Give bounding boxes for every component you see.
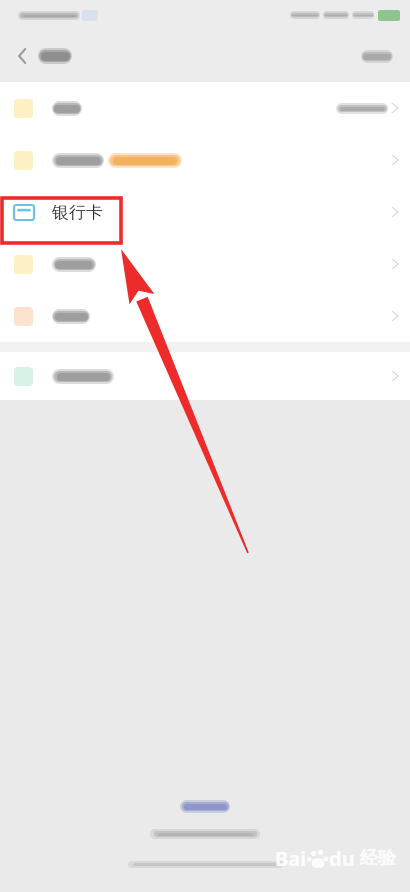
button[interactable]: 银行卡 bbox=[0, 186, 410, 238]
staticText: du bbox=[329, 845, 355, 872]
staticText: 经验 bbox=[360, 847, 396, 870]
button[interactable]: Back bbox=[6, 39, 40, 73]
staticText: Bai bbox=[275, 845, 307, 872]
button[interactable] bbox=[0, 82, 410, 134]
button[interactable] bbox=[0, 134, 410, 186]
staticText: 银行卡 bbox=[52, 202, 103, 223]
button[interactable] bbox=[0, 238, 410, 290]
button[interactable] bbox=[0, 352, 410, 400]
button[interactable] bbox=[0, 290, 410, 342]
